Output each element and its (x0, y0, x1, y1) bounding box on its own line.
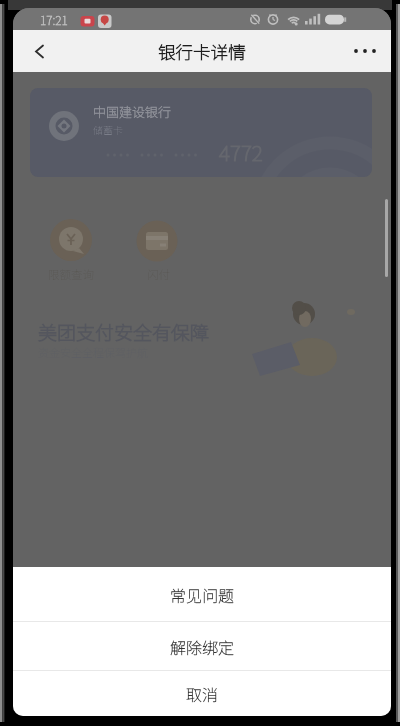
staticText: 17:21 (40, 11, 68, 28)
staticText: 中国建设银行 (93, 102, 172, 121)
staticText: 银行卡详情 (158, 39, 246, 64)
staticText: 解除绑定 (170, 635, 235, 658)
button[interactable]: 解除绑定 (13, 622, 391, 670)
staticText: 解除绑定 (170, 635, 235, 658)
staticText: 美团支付安全有保障 (38, 318, 210, 346)
button[interactable]: 中国建设银行 (30, 88, 372, 177)
staticText: 17:21 (40, 11, 68, 28)
button[interactable] (126, 210, 186, 290)
button[interactable] (17, 30, 61, 72)
button[interactable] (41, 210, 101, 290)
staticText: 储蓄卡 (93, 122, 123, 136)
staticText: 银行卡详情 (158, 39, 246, 64)
button[interactable] (343, 30, 389, 72)
staticText: 常见问题 (170, 583, 235, 606)
staticText: 常见问题 (170, 583, 235, 606)
staticText: 取消 (186, 682, 219, 705)
button[interactable]: 常见问题 (13, 567, 391, 621)
staticText: 中国建设银行 (93, 102, 172, 121)
staticText: 取消 (186, 682, 219, 705)
staticText: 4772 (219, 137, 263, 167)
staticText: 美团支付安全有保障 (38, 318, 210, 346)
button[interactable]: 取消 (13, 671, 391, 716)
staticText: 4772 (219, 137, 263, 167)
